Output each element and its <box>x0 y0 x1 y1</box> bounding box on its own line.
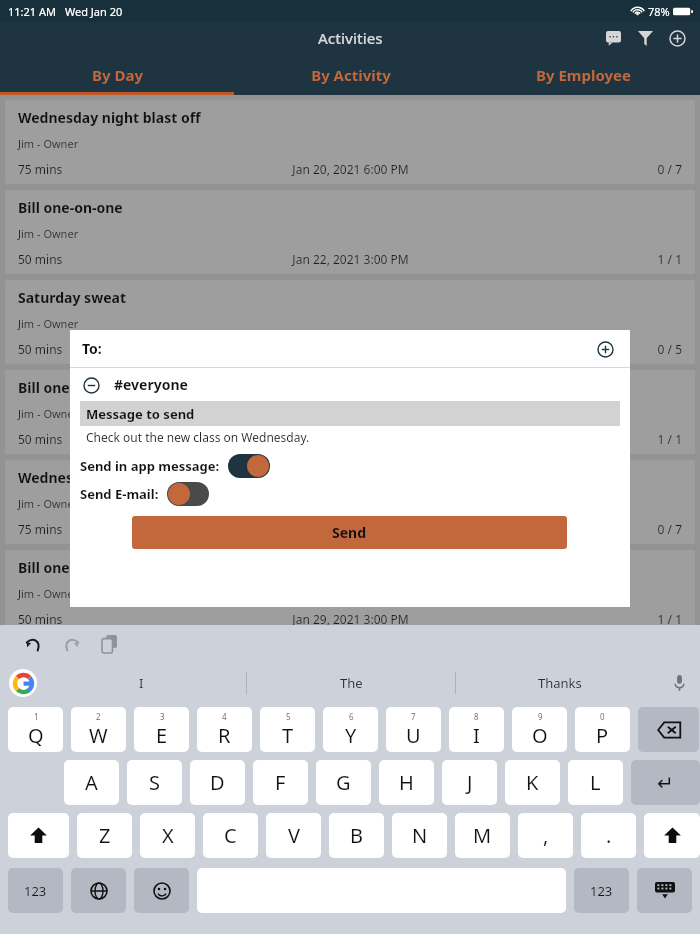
staticText: Check out the new class on Wednesday. <box>86 429 310 445</box>
staticText: A <box>85 769 98 796</box>
button[interactable]: Thanks <box>456 663 664 703</box>
button[interactable]: Voice input <box>664 668 694 698</box>
staticText: J <box>467 769 473 796</box>
button[interactable]: M <box>455 813 510 858</box>
staticText: Send in app message: <box>80 457 220 475</box>
staticText: 6 <box>349 711 354 722</box>
button[interactable]: H <box>379 760 434 805</box>
button[interactable]: Key <box>134 868 189 913</box>
button[interactable]: V <box>266 813 321 858</box>
staticText: 0 / 7 <box>487 521 682 537</box>
button[interactable]: Bill one-on-one <box>5 370 695 454</box>
staticText: Jim - Owner <box>18 496 79 511</box>
staticText: Message to send <box>86 405 195 423</box>
button[interactable]: Clipboard <box>94 629 124 659</box>
button[interactable]: By Employee <box>467 54 700 95</box>
button[interactable]: Google <box>9 669 37 697</box>
button[interactable]: G <box>316 760 371 805</box>
button[interactable]: 9 <box>512 707 567 752</box>
button[interactable]: 6 <box>323 707 378 752</box>
staticText: S <box>149 769 160 796</box>
button[interactable]: S <box>127 760 182 805</box>
button[interactable]: D <box>190 760 245 805</box>
button[interactable]: X <box>140 813 195 858</box>
button[interactable]: #everyone <box>70 368 630 401</box>
button[interactable]: C <box>203 813 258 858</box>
staticText: Z <box>99 822 111 849</box>
button[interactable]: K <box>505 760 560 805</box>
button[interactable]: I <box>37 663 246 703</box>
staticText: Q <box>28 722 44 749</box>
staticText: 5 <box>286 711 291 722</box>
button[interactable]: F <box>253 760 308 805</box>
staticText: 123 <box>24 882 47 900</box>
button[interactable]: Saturday sweat <box>5 280 695 364</box>
button[interactable]: The <box>247 663 455 703</box>
staticText: H <box>399 769 414 796</box>
button[interactable]: Bill one-on-one <box>5 550 695 634</box>
button[interactable]: Key <box>644 813 700 858</box>
button[interactable]: N <box>392 813 447 858</box>
button[interactable]: Key <box>631 760 700 805</box>
staticText: 0 <box>600 711 605 722</box>
staticText: 50 mins <box>18 431 214 447</box>
button[interactable]: 7 <box>386 707 441 752</box>
button[interactable]: Bill one-on-one <box>5 190 695 274</box>
button[interactable]: By Day <box>0 54 234 95</box>
staticText: By Activity <box>311 65 391 85</box>
button[interactable]: Z <box>77 813 132 858</box>
staticText: 75 mins <box>18 161 214 177</box>
staticText: 2 <box>96 711 101 722</box>
staticText: The <box>340 674 363 692</box>
button[interactable]: J <box>442 760 497 805</box>
button[interactable]: Add activity <box>664 25 690 51</box>
button[interactable]: 4 <box>197 707 252 752</box>
button[interactable]: Key <box>574 868 629 913</box>
button[interactable]: 5 <box>260 707 315 752</box>
button[interactable]: 2 <box>71 707 126 752</box>
button[interactable]: Add recipient <box>592 336 618 362</box>
button[interactable]: B <box>329 813 384 858</box>
button[interactable]: Undo <box>18 629 48 659</box>
button[interactable]: Key <box>71 868 126 913</box>
button[interactable]: Wednesday night blast off <box>5 460 695 544</box>
staticText: R <box>218 722 231 749</box>
button[interactable]: 3 <box>134 707 189 752</box>
button[interactable]: Key <box>8 868 63 913</box>
staticText: 50 mins <box>18 251 214 267</box>
button[interactable]: 0 <box>575 707 630 752</box>
button[interactable]: Filter <box>632 25 658 51</box>
staticText: Jim - Owner <box>18 316 79 331</box>
button[interactable]: Off <box>167 482 209 506</box>
button[interactable]: Redo <box>56 629 86 659</box>
button[interactable]: Wednesday night blast off <box>5 100 695 184</box>
staticText: Thanks <box>538 674 582 692</box>
staticText: , <box>543 822 549 849</box>
button[interactable]: Check out the new class on Wednesday. <box>80 426 620 448</box>
staticText: Jan 29, 2021 3:00 PM <box>214 611 487 627</box>
staticText: 0 / 7 <box>487 161 682 177</box>
button[interactable]: By Activity <box>234 54 467 95</box>
staticText: C <box>224 822 237 849</box>
button[interactable]: , <box>518 813 573 858</box>
button[interactable]: 1 <box>8 707 63 752</box>
staticText: F <box>275 769 286 796</box>
staticText: Jan 25, 2021 3:00 PM <box>214 431 487 447</box>
button[interactable]: A <box>64 760 119 805</box>
button[interactable]: Messages <box>600 25 626 51</box>
staticText: N <box>412 822 428 849</box>
button[interactable]: Send <box>132 516 567 549</box>
staticText: K <box>526 769 539 796</box>
button[interactable]: 8 <box>449 707 504 752</box>
button[interactable]: L <box>568 760 623 805</box>
button[interactable]: . <box>581 813 636 858</box>
button[interactable]: Key <box>638 707 699 752</box>
staticText: To: <box>82 339 102 358</box>
staticText: Activities <box>318 28 383 48</box>
button[interactable]: Key <box>8 813 69 858</box>
button[interactable]: On <box>228 454 270 478</box>
staticText: Bill one-on-one <box>18 198 123 217</box>
button[interactable]: Key <box>637 868 692 913</box>
staticText: I <box>139 674 144 692</box>
